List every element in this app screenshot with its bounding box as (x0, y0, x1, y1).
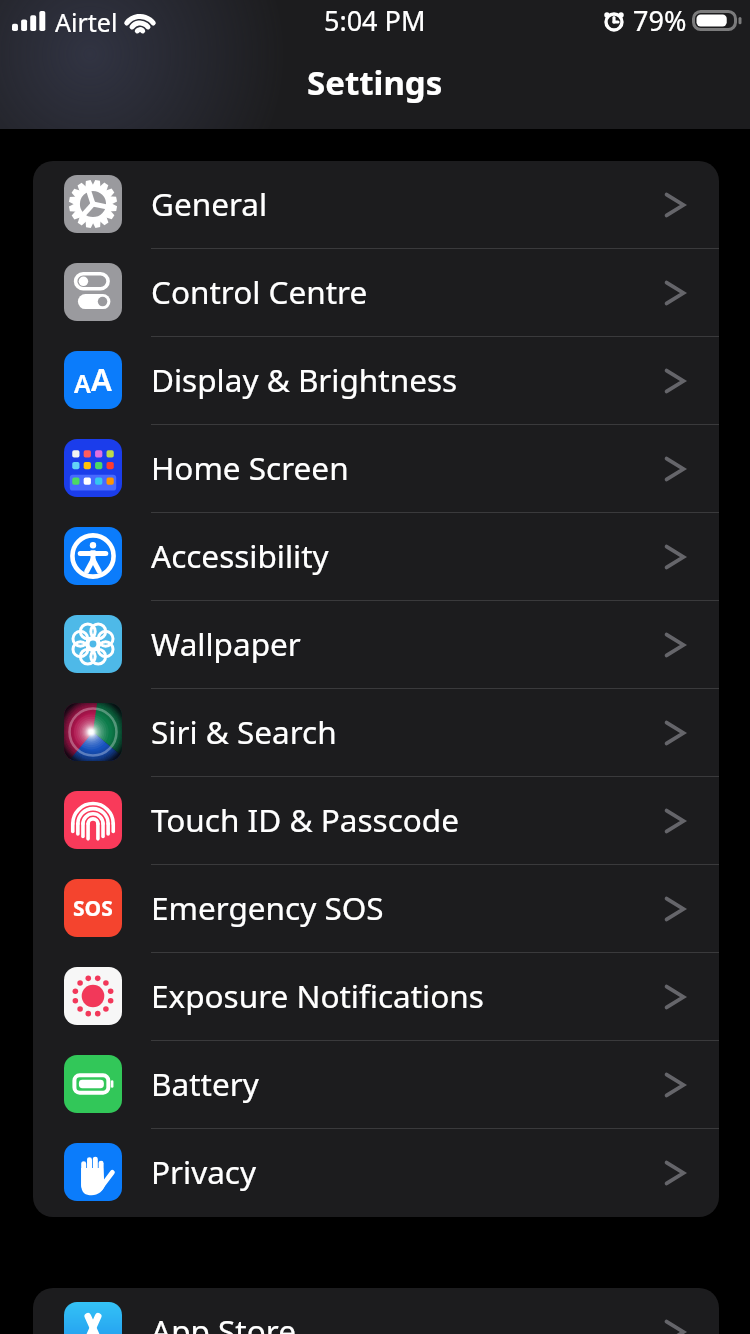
staticText: 5:04 PM (324, 2, 426, 39)
staticText: Touch ID & Passcode (151, 798, 664, 841)
button[interactable]: Wallpaper (33, 601, 719, 689)
staticText: Display & Brightness (151, 358, 664, 401)
button[interactable]: Battery (33, 1041, 719, 1129)
button[interactable]: Privacy (33, 1129, 719, 1217)
staticText: Settings (307, 60, 443, 105)
button[interactable]: Touch ID & Passcode (33, 777, 719, 865)
staticText: Home Screen (151, 446, 664, 489)
staticText: Privacy (151, 1150, 664, 1193)
staticText: 79% (633, 2, 687, 39)
staticText: Airtel (55, 5, 118, 39)
button[interactable]: Exposure Notifications (33, 953, 719, 1041)
staticText: Battery (151, 1062, 664, 1105)
button[interactable]: Accessibility (33, 513, 719, 601)
staticText: A (91, 358, 112, 400)
staticText: App Store (151, 1309, 664, 1334)
staticText: Wallpaper (151, 622, 664, 665)
button[interactable]: Emergency SOS (33, 865, 719, 953)
staticText: Siri & Search (151, 710, 664, 753)
staticText: Control Centre (151, 270, 664, 313)
button[interactable]: Control Centre (33, 249, 719, 337)
staticText: Emergency SOS (151, 886, 664, 929)
staticText: SOS (73, 894, 113, 923)
button[interactable]: Home Screen (33, 425, 719, 513)
button[interactable]: General (33, 161, 719, 249)
button[interactable]: App Store (33, 1288, 719, 1334)
button[interactable]: Display & Brightness (33, 337, 719, 425)
staticText: Accessibility (151, 534, 664, 577)
staticText: Exposure Notifications (151, 974, 664, 1017)
button[interactable]: Siri & Search (33, 689, 719, 777)
staticText: A (74, 366, 91, 400)
staticText: General (151, 182, 664, 225)
